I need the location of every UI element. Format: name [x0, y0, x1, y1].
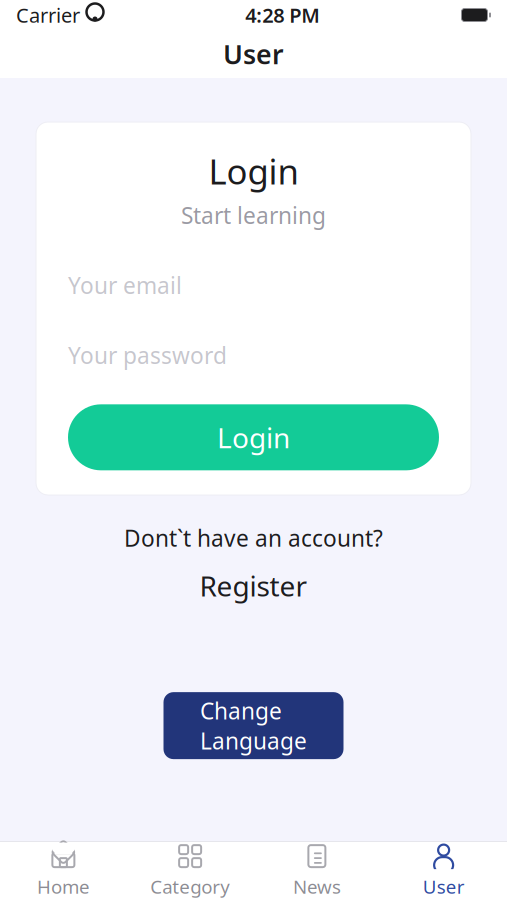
button[interactable]: Category: [127, 842, 254, 900]
button[interactable]: User: [380, 842, 507, 900]
staticText: Your email: [68, 270, 182, 300]
staticText: User: [423, 874, 465, 899]
staticText: Home: [37, 874, 90, 899]
staticText: News: [293, 874, 341, 899]
staticText: 4:28 PM: [245, 2, 320, 28]
staticText: User: [223, 36, 284, 72]
staticText: Register: [199, 567, 307, 604]
button[interactable]: Home: [0, 842, 127, 900]
staticText: Category: [150, 874, 230, 899]
staticText: Change Language: [200, 695, 307, 756]
staticText: Start learning: [181, 200, 326, 230]
staticText: Login: [217, 419, 290, 456]
staticText: Dont`t have an account?: [124, 523, 383, 553]
button[interactable]: Register: [181, 561, 325, 610]
staticText: Your password: [68, 340, 227, 370]
button[interactable]: News: [253, 842, 380, 900]
button[interactable]: Change Language: [163, 692, 343, 759]
button[interactable]: Login: [68, 404, 439, 470]
staticText: Carrier: [16, 2, 80, 28]
staticText: Login: [208, 148, 298, 194]
